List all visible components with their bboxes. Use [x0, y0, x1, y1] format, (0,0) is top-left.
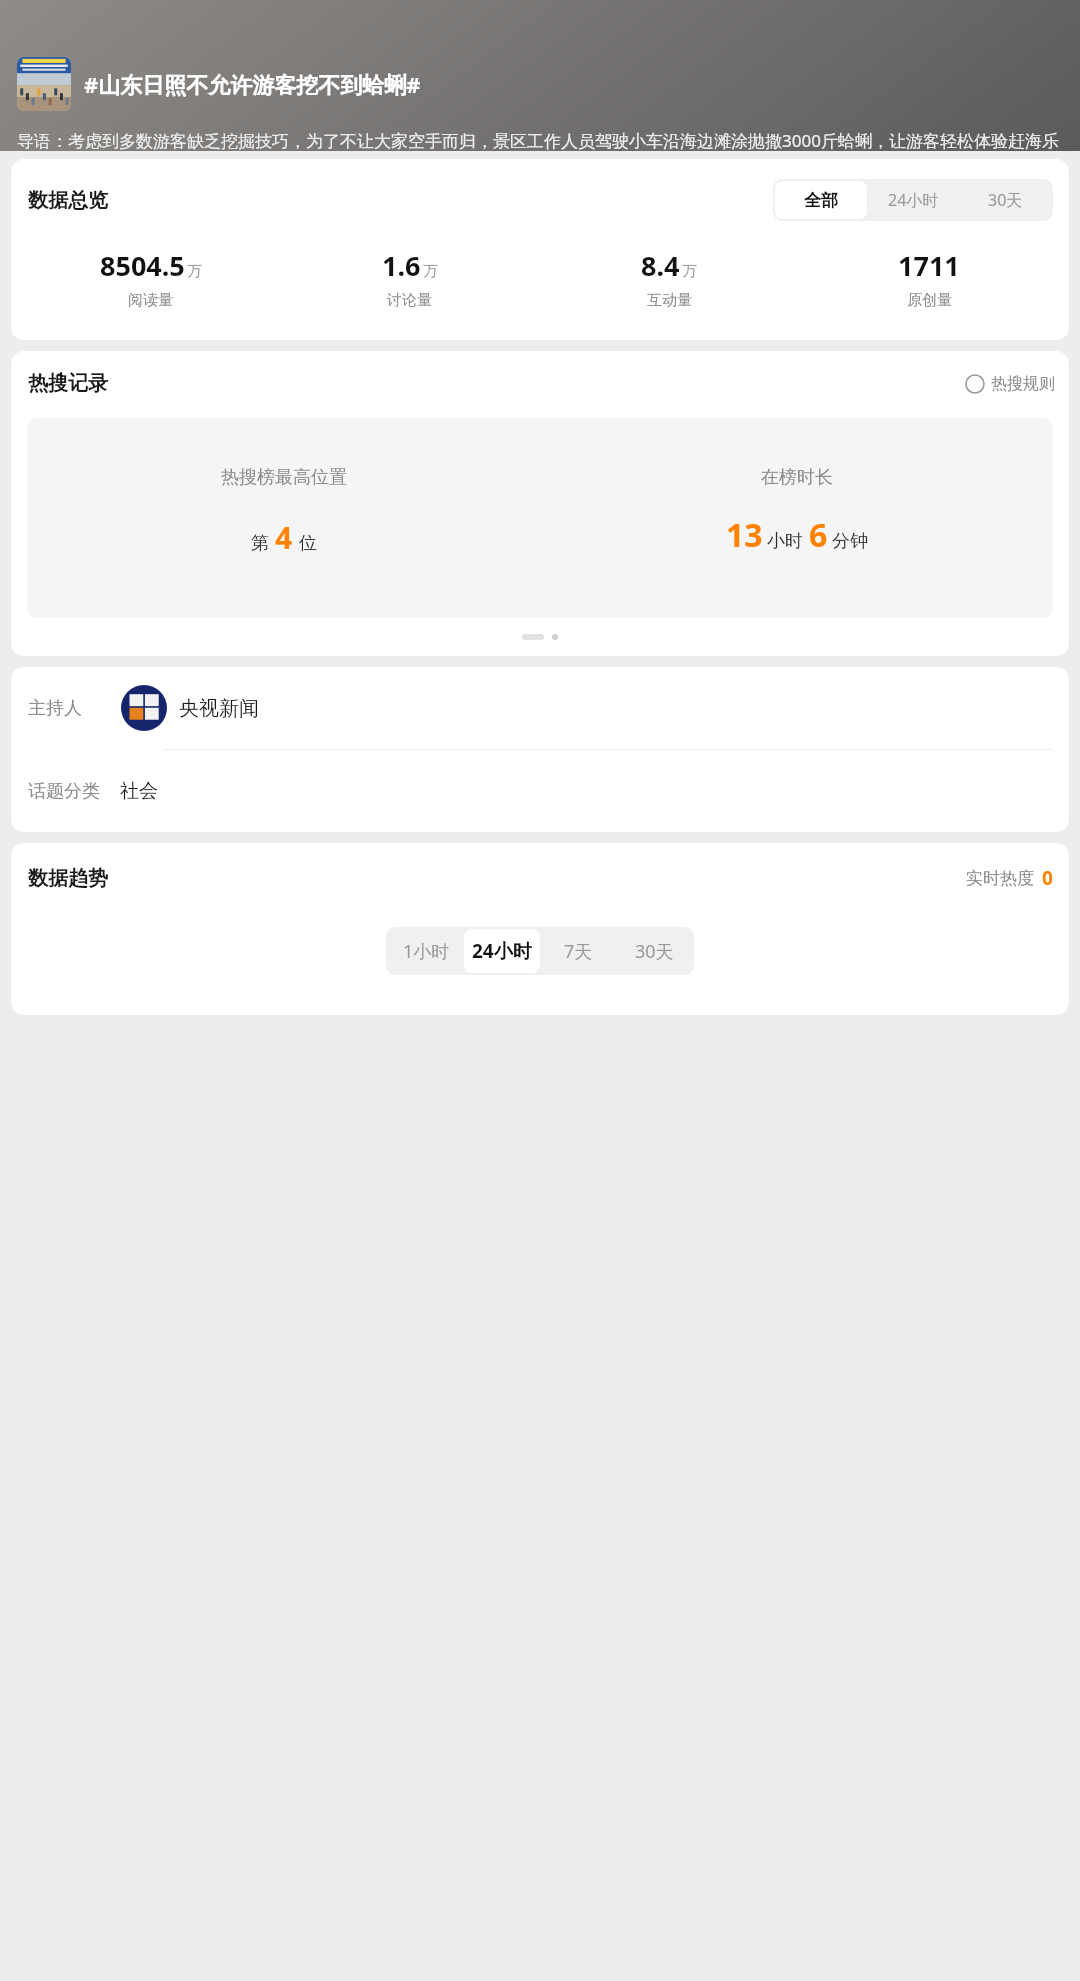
staticText: 7天 — [564, 939, 593, 964]
staticText: 1711 — [898, 247, 960, 284]
staticText: 8.4 — [641, 247, 680, 284]
staticText: 实时热度 — [966, 868, 1034, 889]
button[interactable]: 全部 — [775, 181, 867, 219]
button[interactable]: 热搜榜最高位置 — [27, 418, 1053, 618]
staticText: 13 — [726, 513, 763, 557]
staticText: 主持人 — [28, 697, 82, 720]
staticText: 热搜榜最高位置 — [221, 466, 347, 489]
staticText: 位 — [299, 532, 317, 555]
staticText: 30天 — [988, 189, 1023, 211]
staticText: 互动量 — [647, 291, 692, 310]
staticText: 万 — [682, 262, 697, 281]
staticText: 24小时 — [888, 189, 939, 211]
button[interactable]: 1.6 — [280, 247, 539, 310]
staticText: 数据总览 — [28, 188, 108, 213]
staticText: 热搜规则 — [991, 374, 1055, 394]
staticText: 全部 — [804, 190, 838, 211]
staticText: 1.6 — [382, 247, 421, 284]
staticText: 8504.5 — [100, 247, 185, 284]
staticText: 阅读量 — [128, 291, 173, 310]
button[interactable]: 24小时 — [867, 181, 959, 219]
button[interactable]: 话题分类 — [11, 750, 1069, 832]
button[interactable]: 24小时 — [464, 929, 540, 973]
button[interactable]: 7天 — [540, 929, 616, 973]
staticText: 央视新闻 — [179, 696, 259, 721]
staticText: 导语：考虑到多数游客缺乏挖掘技巧，为了不让大家空手而归，景区工作人员驾驶小车沿海… — [17, 129, 1063, 151]
staticText: 4 — [275, 517, 293, 558]
staticText: 社会 — [120, 779, 158, 803]
staticText: 原创量 — [907, 291, 952, 310]
button[interactable] — [17, 57, 71, 111]
button[interactable]: 热搜规则说明 — [965, 374, 1055, 394]
button[interactable]: 1小时 — [388, 929, 464, 973]
button[interactable]: 30天 — [959, 181, 1051, 219]
button[interactable]: 1711 — [799, 247, 1059, 310]
staticText: 在榜时长 — [761, 466, 833, 489]
staticText: 分钟 — [832, 530, 868, 553]
staticText: 数据趋势 — [28, 866, 108, 891]
button[interactable]: 8504.5 — [21, 247, 280, 310]
staticText: 话题分类 — [28, 780, 100, 803]
staticText: 小时 — [767, 530, 803, 553]
other: 央视新闻头像 — [121, 685, 167, 731]
staticText: 万 — [423, 262, 438, 281]
button[interactable]: 实时热度 — [966, 865, 1053, 891]
staticText: 热搜记录 — [28, 371, 108, 396]
staticText: 24小时 — [472, 938, 532, 964]
staticText: 第 — [251, 532, 269, 555]
button[interactable]: 8.4 — [539, 247, 799, 310]
staticText: 0 — [1042, 865, 1053, 891]
staticText: 30天 — [635, 939, 674, 964]
staticText: 万 — [187, 262, 202, 281]
button[interactable]: 主持人 — [11, 667, 1069, 749]
staticText: 6 — [809, 513, 828, 557]
other: 热搜规则说明 — [965, 374, 985, 394]
staticText: 讨论量 — [387, 291, 432, 310]
button[interactable]: 30天 — [616, 929, 692, 973]
staticText: #山东日照不允许游客挖不到蛤蜊# — [84, 69, 1063, 99]
staticText: 1小时 — [403, 939, 450, 964]
